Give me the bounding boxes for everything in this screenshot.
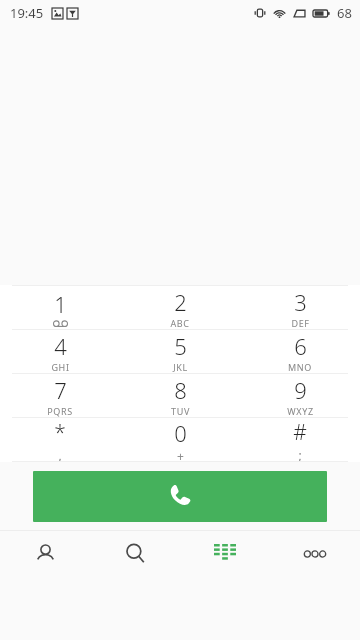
staticText: GHI: [51, 361, 70, 373]
staticText: +: [177, 448, 184, 461]
staticText: 19:45: [10, 4, 44, 22]
button[interactable]: 9: [240, 374, 360, 417]
button[interactable]: 5: [120, 330, 240, 373]
button[interactable]: Dialpad: [180, 531, 270, 576]
staticText: 0: [174, 418, 187, 448]
button[interactable]: More options: [270, 531, 360, 576]
staticText: 2: [174, 287, 187, 317]
staticText: 9: [294, 375, 307, 405]
staticText: 5: [174, 331, 187, 361]
button[interactable]: #: [240, 418, 360, 461]
staticText: 3: [294, 287, 307, 317]
staticText: MNO: [288, 361, 312, 373]
button[interactable]: 8: [120, 374, 240, 417]
staticText: JKL: [173, 361, 188, 373]
staticText: ,: [58, 447, 62, 461]
staticText: PQRS: [47, 405, 73, 417]
button[interactable]: Contacts: [0, 531, 90, 576]
button[interactable]: 6: [240, 330, 360, 373]
button[interactable]: 7: [0, 374, 120, 417]
staticText: 7: [54, 375, 67, 405]
button[interactable]: *: [0, 418, 120, 461]
staticText: #: [293, 418, 307, 447]
button[interactable]: Search: [90, 531, 180, 576]
staticText: ;: [298, 447, 302, 461]
staticText: WXYZ: [287, 405, 314, 417]
staticText: DEF: [291, 317, 310, 329]
staticText: ABC: [170, 317, 190, 329]
button[interactable]: 2: [120, 286, 240, 329]
button[interactable]: 3: [240, 286, 360, 329]
staticText: 4: [54, 331, 67, 361]
staticText: 8: [174, 375, 187, 405]
staticText: TUV: [171, 405, 190, 417]
staticText: *: [54, 418, 66, 447]
staticText: 6: [294, 331, 307, 361]
staticText: 68: [337, 4, 352, 22]
button[interactable]: 1: [0, 286, 120, 329]
button[interactable]: 4: [0, 330, 120, 373]
button[interactable]: 0: [120, 418, 240, 461]
staticText: 1: [54, 289, 67, 319]
button[interactable]: Call: [33, 471, 327, 522]
